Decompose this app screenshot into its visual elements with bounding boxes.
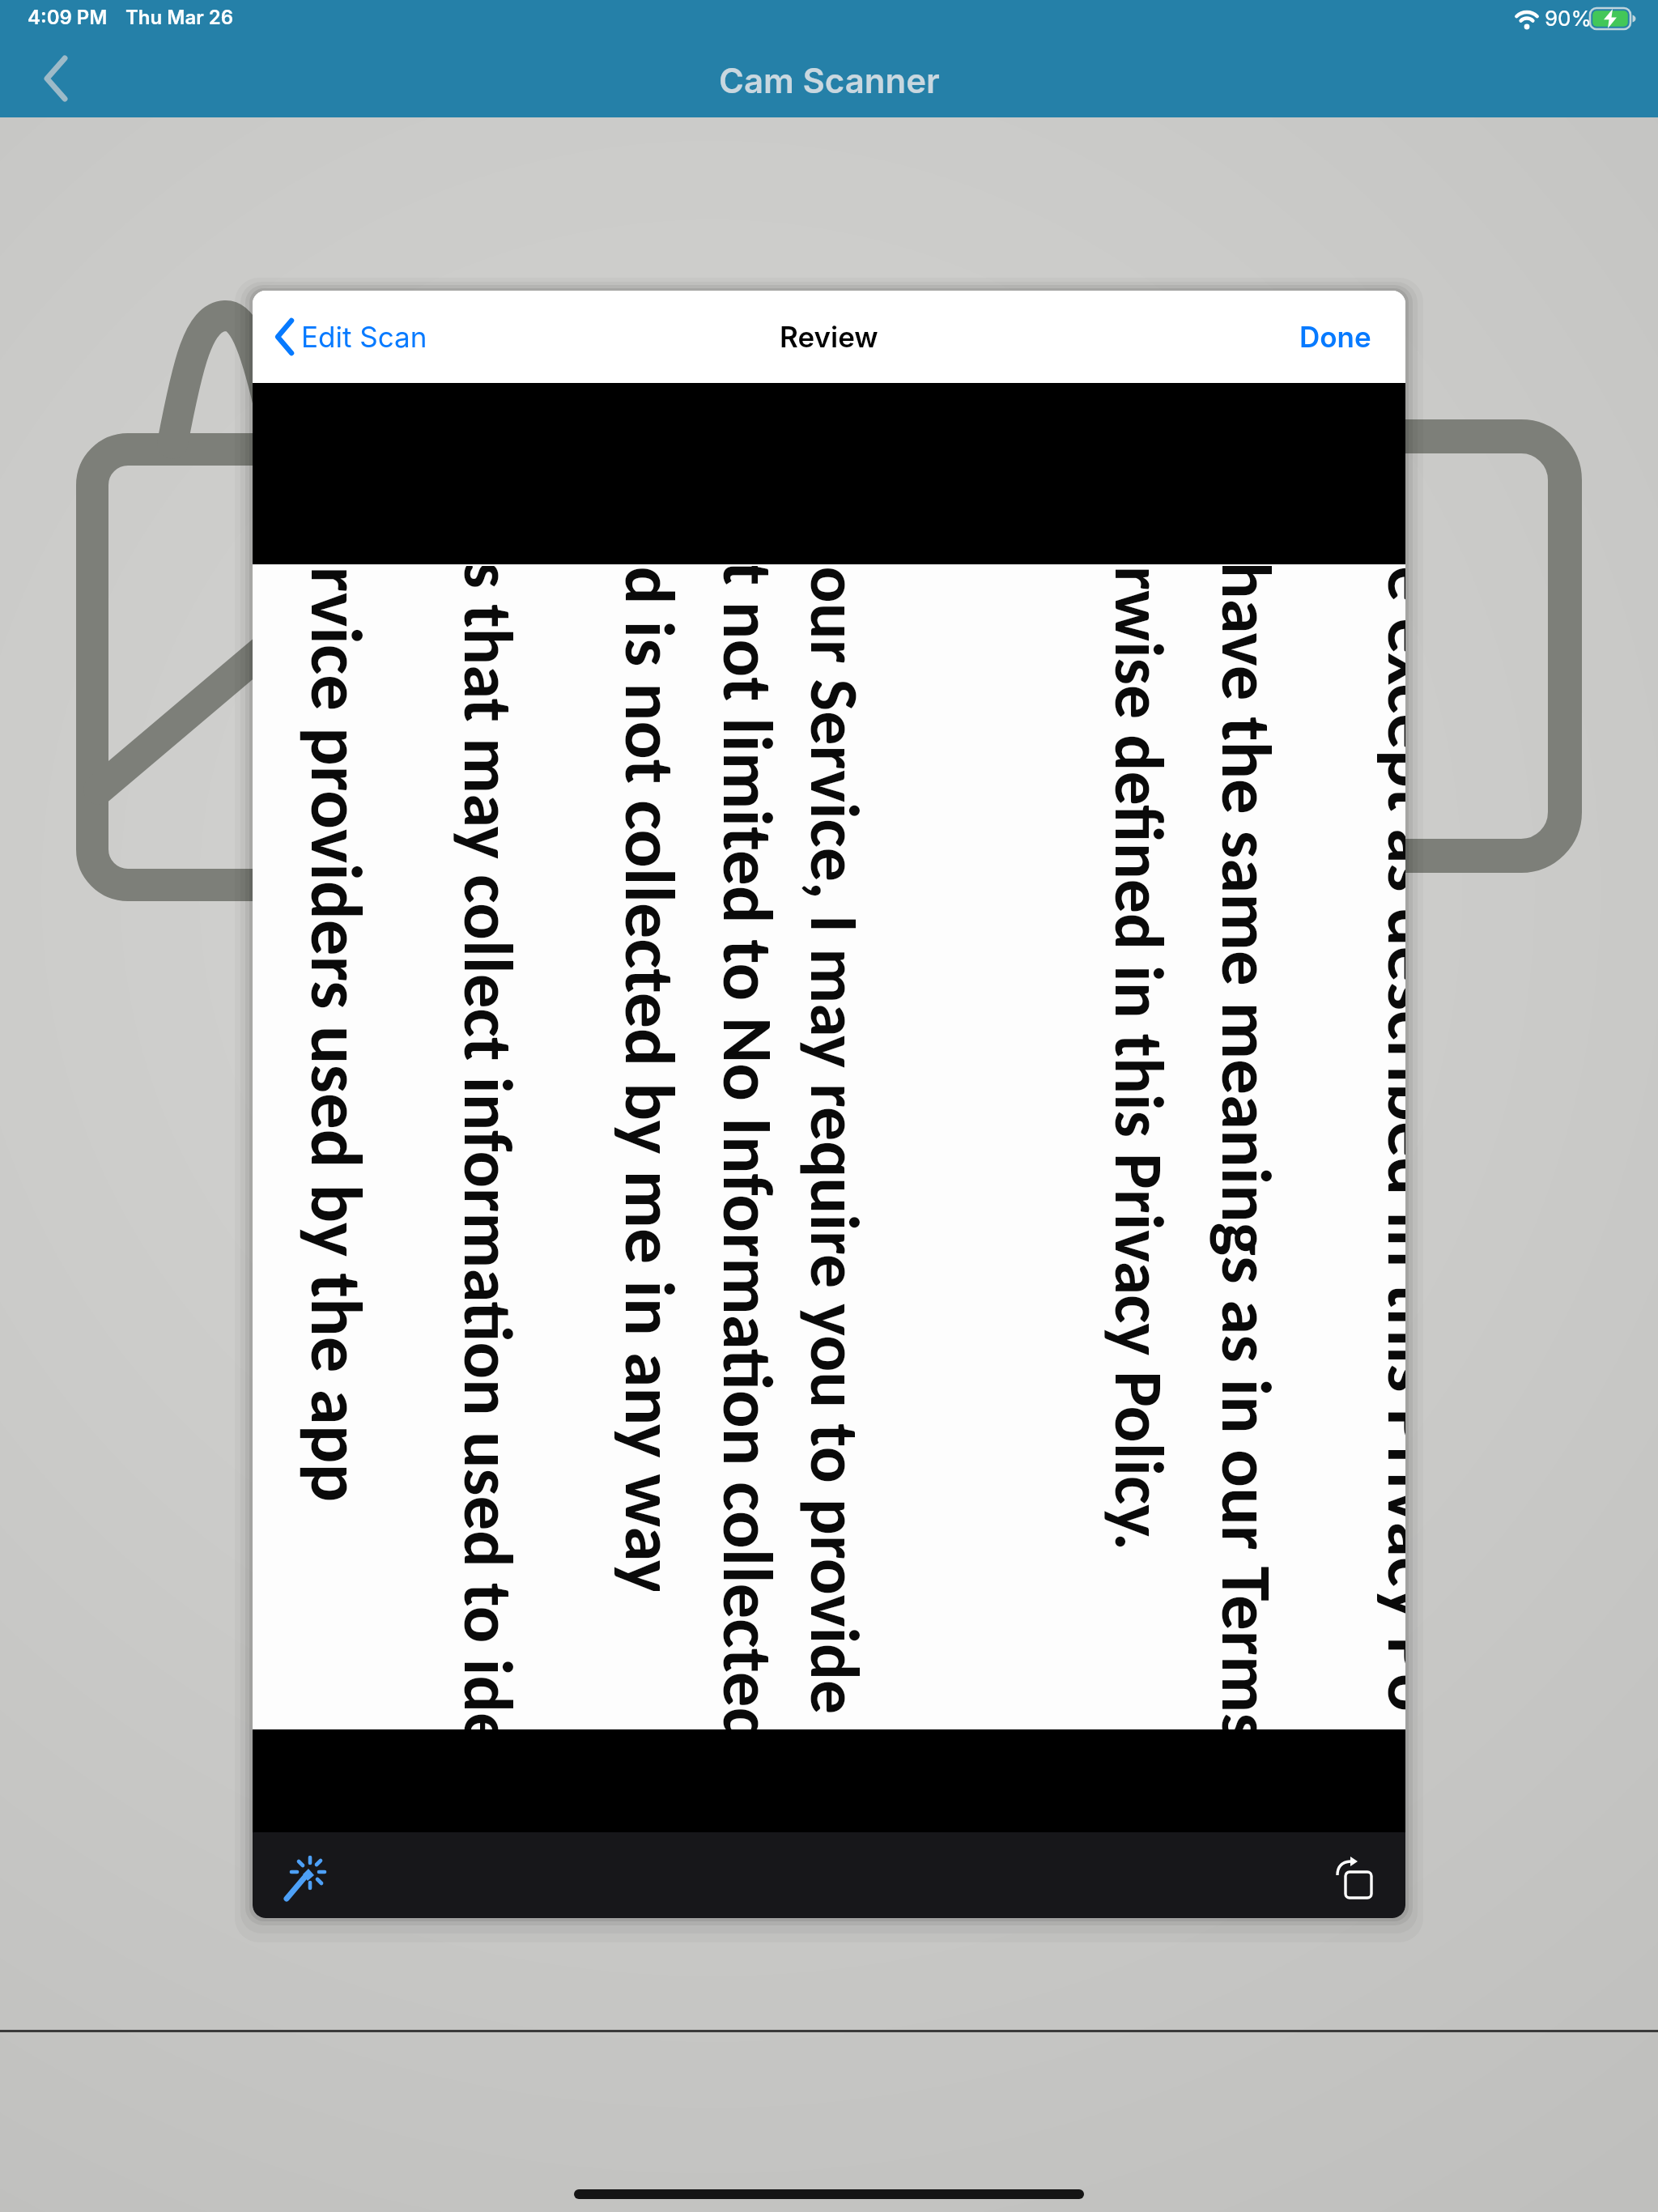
button[interactable] [36, 49, 81, 108]
button[interactable] [1335, 1856, 1377, 1901]
staticText: Cam Scanner [719, 60, 940, 101]
staticText: e except as described in this Privacy Po [1370, 566, 1405, 1715]
staticText: Review [780, 320, 878, 354]
staticText: Edit Scan [301, 320, 427, 354]
staticText: rvice providers used by the app [292, 566, 380, 1504]
staticText: 90% [1545, 6, 1592, 31]
staticText: s that may collect information used to i… [446, 566, 530, 1729]
staticText: 4:09 PM [28, 6, 108, 29]
button[interactable]: Done [1299, 320, 1371, 354]
button[interactable]: Edit Scan [274, 318, 427, 355]
staticText: Thu Mar 26 [125, 6, 234, 29]
staticText: our Service, I may require you to provid… [792, 566, 876, 1716]
staticText: rwise defined in this Privacy Policy. [1097, 566, 1180, 1555]
staticText: d is not collected by me in any way [607, 566, 693, 1591]
button[interactable] [283, 1857, 327, 1902]
staticText: Done [1299, 320, 1371, 354]
staticText: t not limited to No Information collecte… [705, 566, 791, 1729]
staticText: have the same meanings as in our Terms a [1204, 566, 1290, 1729]
